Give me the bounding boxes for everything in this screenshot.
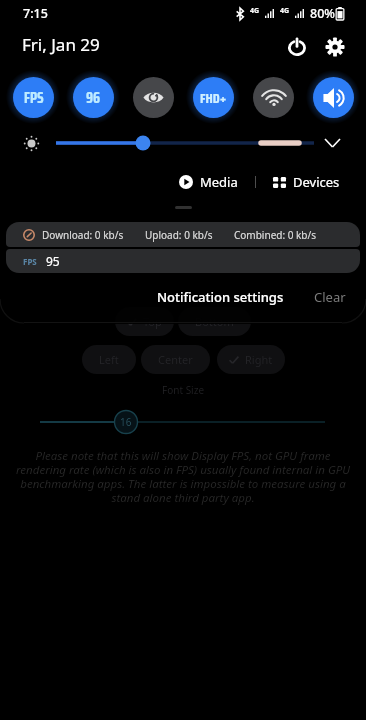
- button[interactable]: Refresh rate 96: [73, 77, 114, 118]
- button[interactable]: FPS overlay: [13, 77, 54, 118]
- staticText: FPS: [24, 86, 44, 110]
- staticText: 7:15: [23, 5, 48, 22]
- button[interactable]: Top: [115, 307, 174, 336]
- staticText: 4G: [250, 6, 260, 16]
- staticText: Please note that this will show Display …: [12, 448, 354, 506]
- staticText: Devices: [293, 173, 340, 191]
- button[interactable]: Clear: [310, 285, 350, 309]
- staticText: Top: [143, 314, 162, 329]
- button[interactable]: FHD+ resolution: [193, 77, 234, 118]
- staticText: Notification settings: [157, 288, 284, 306]
- staticText: Upload: 0 kb/s: [145, 228, 213, 242]
- staticText: 80%: [310, 5, 335, 22]
- staticText: Right: [245, 352, 273, 367]
- staticText: Combined: 0 kb/s: [234, 228, 317, 242]
- staticText: FHD+: [200, 87, 227, 109]
- button[interactable]: Sound: [313, 77, 354, 118]
- staticText: Media: [200, 173, 238, 191]
- button[interactable]: Center: [141, 345, 210, 374]
- button[interactable]: FPS: [6, 249, 360, 273]
- button[interactable]: Left: [82, 345, 136, 374]
- button[interactable]: Devices: [269, 170, 344, 194]
- button[interactable]: Notification settings: [153, 285, 288, 309]
- button[interactable]: Bottom: [178, 307, 251, 336]
- staticText: Font Size: [162, 383, 205, 397]
- button[interactable]: Wi-Fi: [253, 77, 294, 118]
- staticText: 96: [86, 86, 101, 110]
- staticText: 95: [46, 253, 60, 269]
- button[interactable]: Expand quick settings: [320, 131, 344, 155]
- staticText: 4G: [280, 6, 290, 16]
- staticText: Download: 0 kb/s: [42, 228, 124, 242]
- staticText: Center: [158, 352, 193, 367]
- staticText: Left: [99, 352, 119, 367]
- staticText: 16: [120, 415, 132, 429]
- button[interactable]: Eye comfort shield: [133, 77, 174, 118]
- staticText: FPS: [23, 256, 37, 267]
- staticText: Fri, Jan 29: [22, 33, 100, 56]
- staticText: Bottom: [195, 314, 234, 329]
- button[interactable]: Right: [217, 345, 285, 374]
- staticText: Clear: [314, 288, 346, 306]
- button[interactable]: Download: 0 kb/s: [6, 222, 360, 247]
- button[interactable]: Power off: [279, 29, 315, 65]
- button[interactable]: Media: [175, 170, 242, 194]
- button[interactable]: Settings: [317, 29, 353, 65]
